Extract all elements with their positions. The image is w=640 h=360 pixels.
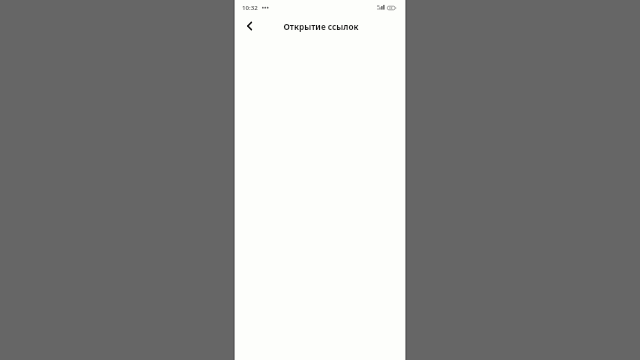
staticText: 10:32 [242, 3, 258, 11]
button[interactable]: Back [239, 19, 259, 39]
staticText: Открытие ссылок [283, 21, 359, 32]
